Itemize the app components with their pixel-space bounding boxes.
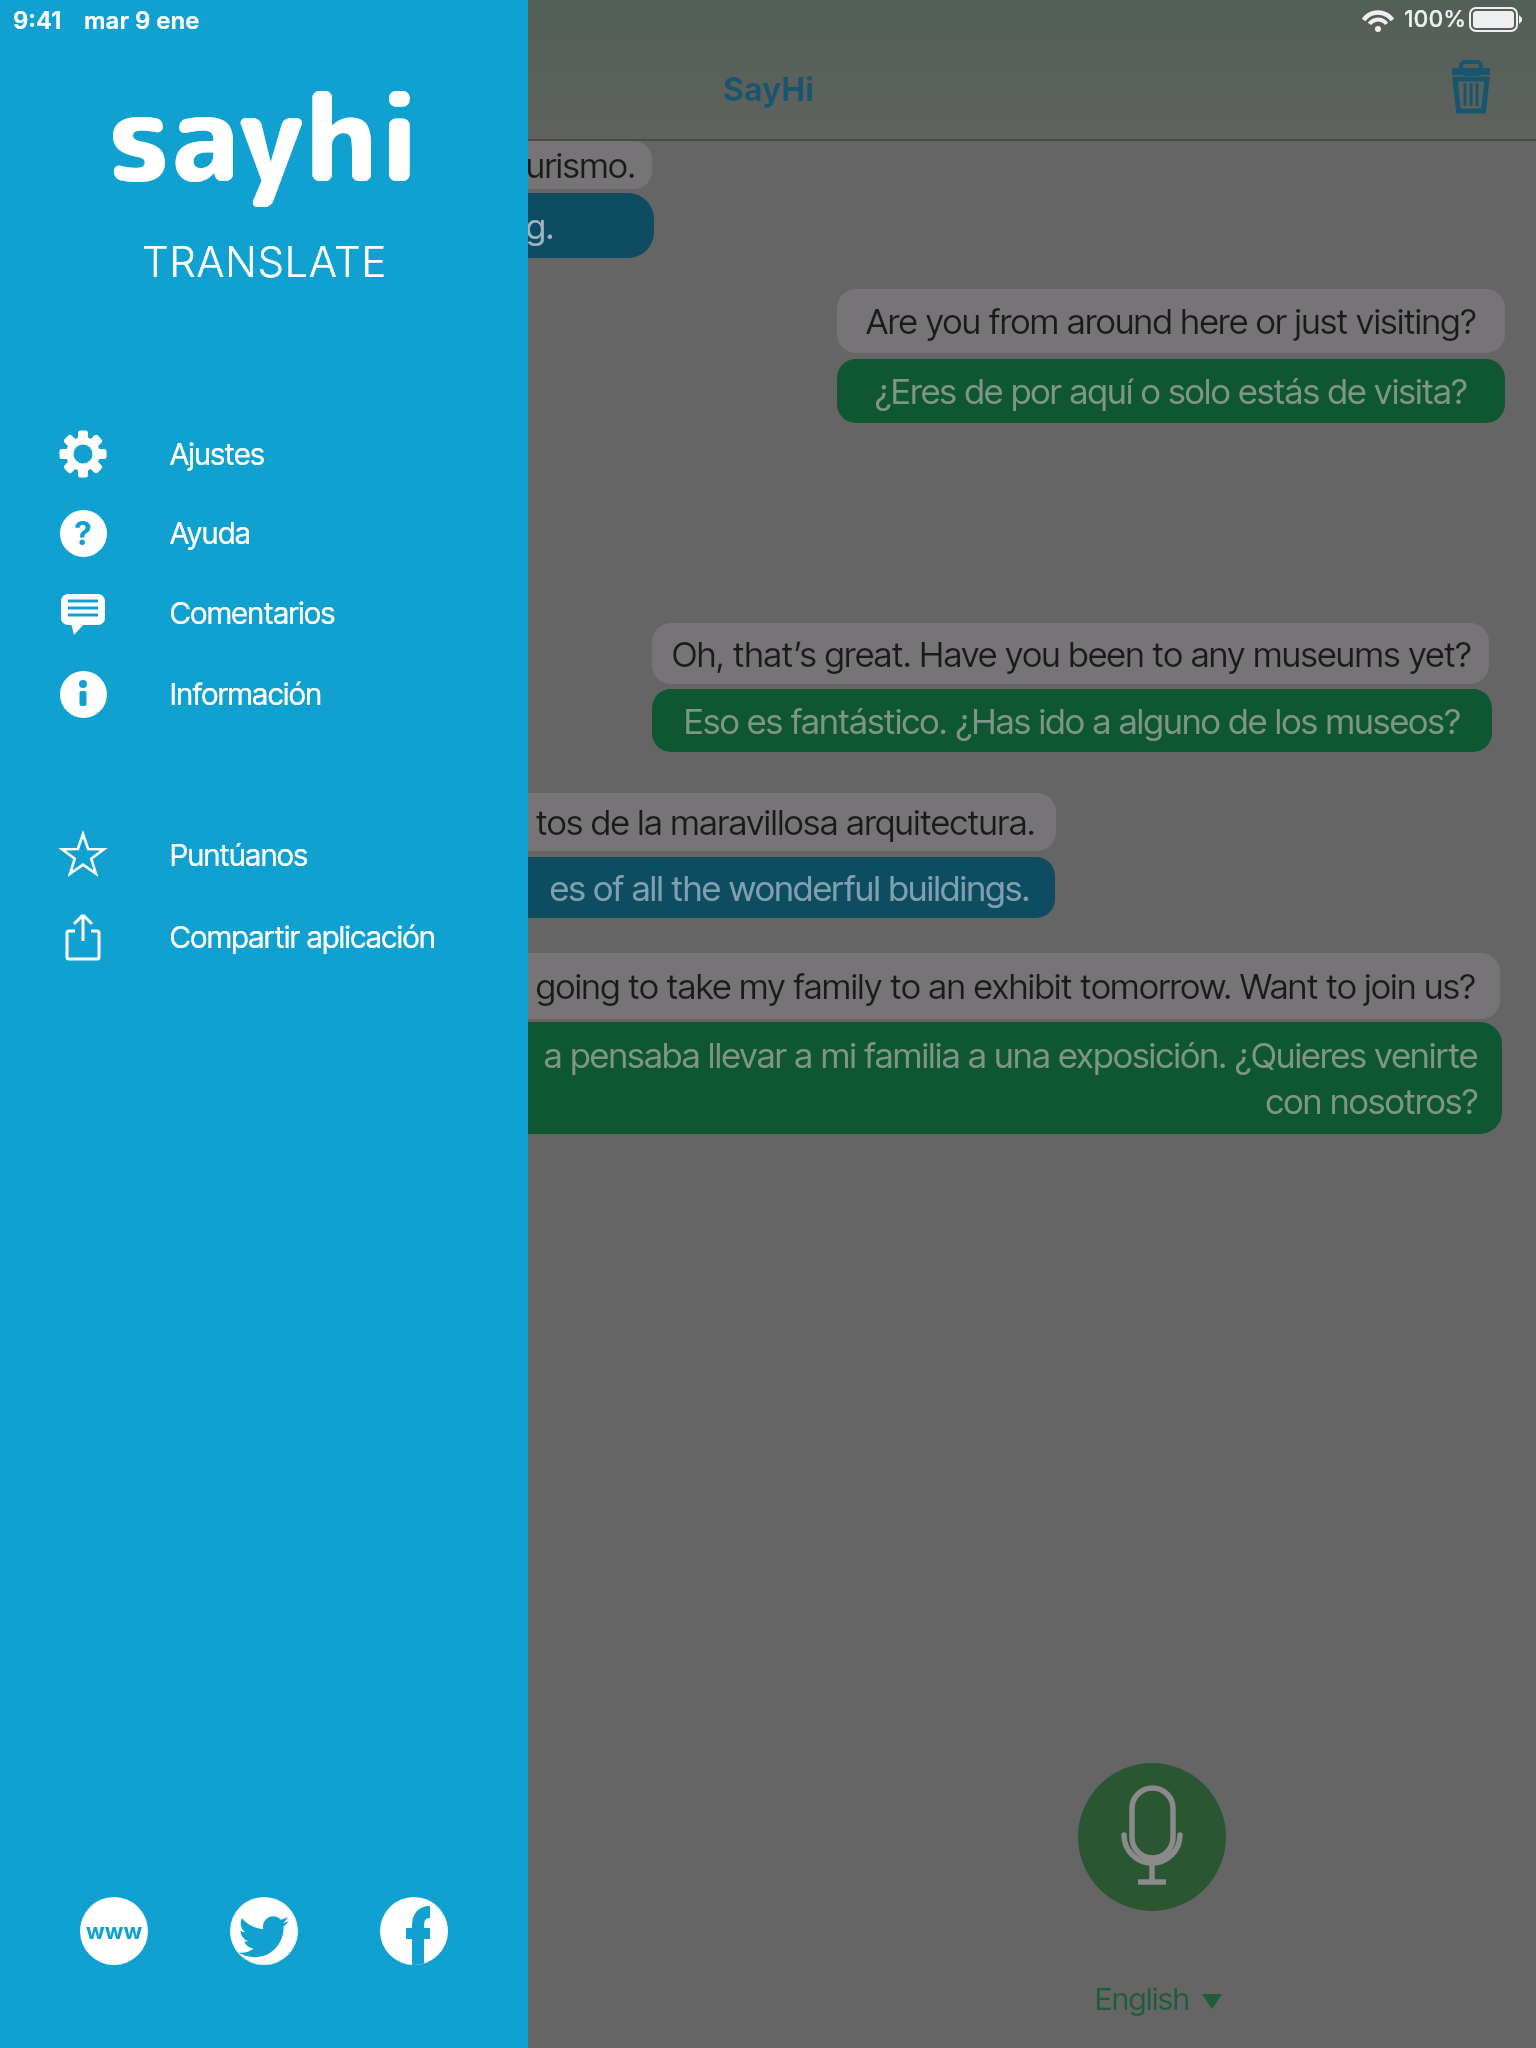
button[interactable] xyxy=(230,1897,298,1965)
staticText: www xyxy=(86,1918,143,1945)
staticText: ¿Eres de por aquí o solo estás de visita… xyxy=(875,370,1468,412)
button[interactable] xyxy=(1078,1763,1226,1911)
button[interactable]: Información xyxy=(59,664,499,724)
button[interactable] xyxy=(380,1897,448,1965)
staticText: going to take my family to an exhibit to… xyxy=(536,965,1476,1007)
staticText: mar 9 ene xyxy=(84,6,200,35)
staticText: Información xyxy=(170,676,322,712)
staticText: urismo. xyxy=(526,144,636,186)
staticText: a pensaba llevar a mi familia a una expo… xyxy=(544,1034,1478,1122)
staticText: Oh, that’s great. Have you been to any m… xyxy=(672,633,1472,675)
button[interactable]: SayHi xyxy=(723,70,814,109)
staticText: sayhi xyxy=(107,52,421,219)
staticText: Ayuda xyxy=(170,515,251,551)
staticText: Compartir aplicación xyxy=(170,919,436,955)
button[interactable]: Ajustes xyxy=(59,424,499,484)
button[interactable]: www xyxy=(80,1897,148,1965)
staticText: Puntúanos xyxy=(170,837,308,873)
button[interactable]: Puntúanos xyxy=(59,825,499,885)
staticText: SayHi xyxy=(723,70,814,109)
button[interactable] xyxy=(1452,62,1492,114)
staticText: Are you from around here or just visitin… xyxy=(866,300,1477,342)
staticText: 100% xyxy=(1404,5,1467,33)
staticText: TRANSLATE xyxy=(142,236,387,287)
button[interactable]: Comentarios xyxy=(59,583,499,643)
staticText: g. xyxy=(526,205,554,247)
staticText: tos de la maravillosa arquitectura. xyxy=(536,801,1036,843)
staticText: ? xyxy=(74,514,92,553)
staticText: es of all the wonderful buildings. xyxy=(550,867,1031,909)
button[interactable]: Compartir aplicación xyxy=(59,907,499,967)
staticText: Ajustes xyxy=(170,436,265,472)
button[interactable]: ? xyxy=(59,503,499,563)
staticText: Comentarios xyxy=(170,595,336,631)
staticText: Eso es fantástico. ¿Has ido a alguno de … xyxy=(684,700,1461,742)
staticText: English xyxy=(1095,1980,1190,2018)
staticText: 9:41 xyxy=(13,6,62,35)
button[interactable]: English xyxy=(1095,1980,1222,2018)
